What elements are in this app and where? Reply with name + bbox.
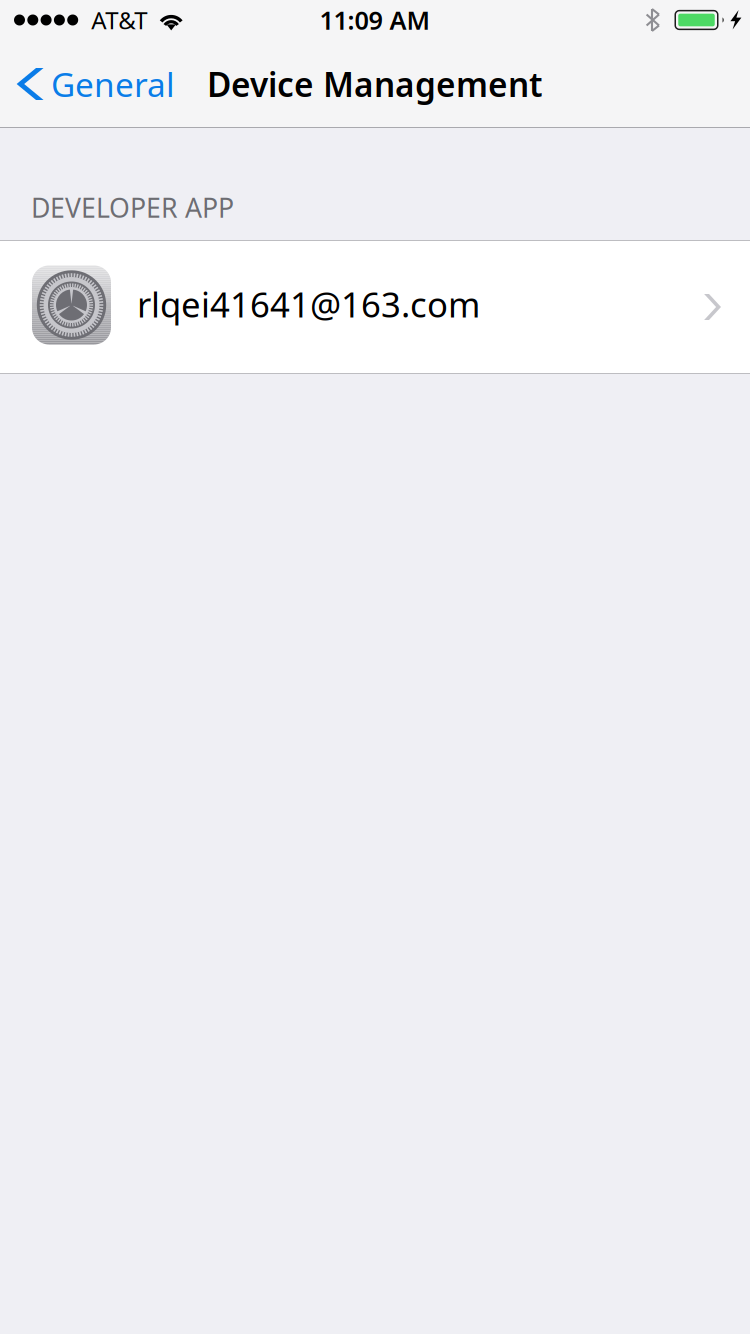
button[interactable]: General bbox=[0, 40, 191, 128]
staticText: Device Management bbox=[207, 62, 543, 106]
staticText: 11:09 AM bbox=[319, 3, 430, 37]
staticText: General bbox=[51, 62, 175, 106]
staticText: DEVELOPER APP bbox=[31, 190, 234, 225]
staticText: AT&T bbox=[91, 4, 147, 36]
staticText: rlqei41641@163.com bbox=[137, 281, 480, 327]
button[interactable]: rlqei41641@163.com bbox=[0, 241, 750, 373]
